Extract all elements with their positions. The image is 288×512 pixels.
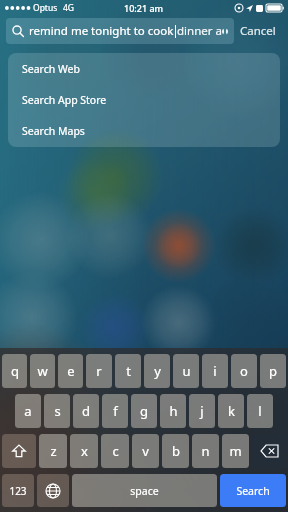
staticText: Search Web <box>22 62 80 76</box>
button[interactable]: b <box>162 434 189 468</box>
staticText: o <box>240 362 248 380</box>
button[interactable]: o <box>231 354 257 388</box>
staticText: d <box>82 402 90 420</box>
button[interactable]: Delete <box>252 434 286 468</box>
button[interactable]: Change keyboard language <box>37 474 69 507</box>
button[interactable]: q <box>2 354 27 388</box>
button[interactable]: Search App Store <box>8 84 280 115</box>
button[interactable]: t <box>115 354 141 388</box>
button[interactable]: u <box>173 354 199 388</box>
button[interactable]: w <box>30 354 55 388</box>
button[interactable]: Shift <box>2 434 36 468</box>
button[interactable]: l <box>247 394 273 428</box>
button[interactable]: x <box>70 434 98 468</box>
staticText: m <box>229 442 242 460</box>
button[interactable]: h <box>160 394 186 428</box>
staticText: j <box>200 402 204 420</box>
staticText: q <box>11 362 19 380</box>
staticText: t <box>126 362 131 380</box>
staticText: g <box>140 402 148 420</box>
staticText: h <box>169 402 178 420</box>
staticText: 10:21 am <box>124 2 164 14</box>
button[interactable]: p <box>260 354 286 388</box>
button[interactable]: Search Web <box>8 53 280 84</box>
button[interactable]: e <box>58 354 83 388</box>
button[interactable]: 123 <box>2 474 34 507</box>
button[interactable]: d <box>73 394 99 428</box>
staticText: a <box>24 402 32 420</box>
staticText: p <box>269 362 277 380</box>
staticText: x <box>81 442 88 460</box>
button[interactable]: m <box>222 434 249 468</box>
button[interactable]: f <box>102 394 128 428</box>
button[interactable]: v <box>132 434 159 468</box>
button[interactable]: n <box>192 434 219 468</box>
button[interactable]: j <box>189 394 215 428</box>
staticText: space <box>130 484 159 498</box>
button[interactable]: Cancel <box>234 18 282 44</box>
staticText: Cancel <box>240 23 276 39</box>
button[interactable]: y <box>144 354 170 388</box>
staticText: k <box>228 402 235 420</box>
staticText: Search App Store <box>22 93 107 107</box>
staticText: remind me tonight to cook <box>29 23 174 39</box>
staticText: dinner a <box>177 23 222 39</box>
staticText: 123 <box>9 484 27 498</box>
button[interactable]: g <box>131 394 157 428</box>
button[interactable]: Search Maps <box>8 115 280 146</box>
button[interactable]: r <box>86 354 112 388</box>
staticText: y <box>154 362 161 380</box>
staticText: n <box>201 442 210 460</box>
button[interactable]: c <box>101 434 129 468</box>
staticText: v <box>142 442 149 460</box>
staticText: Search Maps <box>22 124 85 138</box>
button[interactable]: k <box>218 394 244 428</box>
staticText: 4G <box>63 2 75 14</box>
staticText: Optus <box>33 2 58 14</box>
button[interactable]: remind me tonight to cook <box>6 18 234 44</box>
staticText: l <box>258 402 262 420</box>
button[interactable]: a <box>15 394 41 428</box>
staticText: u <box>182 362 191 380</box>
staticText: z <box>50 442 57 460</box>
button[interactable]: space <box>72 474 217 507</box>
button[interactable]: z <box>39 434 67 468</box>
staticText: r <box>96 362 102 380</box>
staticText: i <box>213 362 217 380</box>
button[interactable]: Search <box>220 474 286 507</box>
staticText: s <box>54 402 61 420</box>
staticText: b <box>172 442 180 460</box>
staticText: Search <box>236 484 270 498</box>
button[interactable]: s <box>44 394 70 428</box>
staticText: w <box>37 362 48 380</box>
staticText: c <box>112 442 119 460</box>
staticText: e <box>67 362 75 380</box>
staticText: f <box>113 402 118 420</box>
button[interactable]: i <box>202 354 228 388</box>
button[interactable]: Clear text <box>222 25 228 38</box>
